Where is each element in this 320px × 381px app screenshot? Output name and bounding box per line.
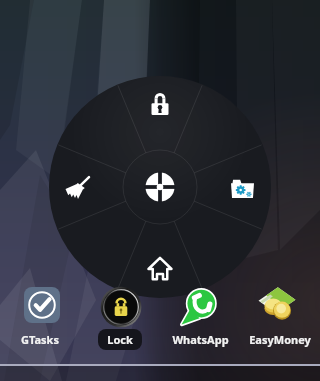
button[interactable]: EasyMoney	[240, 326, 320, 350]
staticText: GTasks	[21, 332, 59, 347]
button[interactable]: WhatsApp	[160, 326, 240, 350]
button[interactable]: GTasks	[0, 326, 80, 350]
other: Pie control menu	[0, 0, 320, 381]
staticText: WhatsApp	[172, 332, 229, 347]
staticText: EasyMoney	[249, 332, 311, 347]
staticText: Lock	[107, 332, 133, 347]
button[interactable]: Lock	[80, 326, 160, 350]
